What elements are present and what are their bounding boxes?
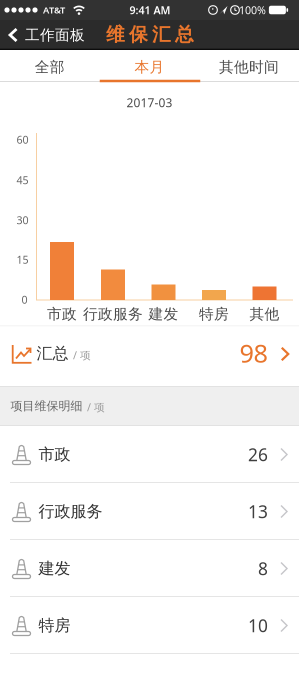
staticText: 0 — [21, 292, 27, 307]
staticText: 建发 — [38, 559, 70, 578]
staticText: 本月 — [134, 58, 164, 76]
staticText: 汇 — [152, 23, 171, 46]
staticText: 15 — [16, 252, 28, 267]
staticText: 8 — [258, 557, 268, 580]
staticText: 其他 — [249, 305, 279, 323]
staticText: 13 — [248, 500, 268, 523]
staticText: 9:41 AM — [129, 3, 170, 17]
staticText: 市政 — [38, 445, 70, 464]
staticText: AT&T — [43, 4, 65, 16]
staticText: 保 — [129, 23, 148, 46]
staticText: 60 — [16, 132, 28, 147]
staticText: 建发 — [148, 305, 178, 323]
staticText: 100% — [239, 3, 266, 17]
staticText: 市政 — [47, 305, 77, 323]
staticText: 其他时间 — [219, 58, 279, 76]
button[interactable]: 全部 — [0, 51, 100, 82]
button[interactable]: 建发 — [0, 540, 299, 597]
staticText: / 项 — [73, 348, 91, 362]
staticText: 项目维保明细 — [10, 399, 82, 413]
button[interactable]: 特房 — [0, 597, 299, 654]
button[interactable]: 市政 — [0, 426, 299, 483]
staticText: 行政服务 — [83, 305, 143, 323]
staticText: 全部 — [35, 58, 65, 76]
staticText: 总 — [175, 23, 194, 46]
staticText: 汇总 — [36, 344, 68, 363]
staticText: / 项 — [87, 400, 105, 414]
staticText: 10 — [248, 614, 268, 637]
button[interactable]: 行政服务 — [0, 483, 299, 540]
button[interactable]: 返回工作面板 — [8, 20, 85, 50]
staticText: 维 — [106, 23, 125, 46]
staticText: 特房 — [199, 305, 229, 323]
staticText: 2017-03 — [126, 94, 172, 110]
staticText: 特房 — [38, 616, 70, 635]
staticText: 26 — [248, 443, 268, 466]
button[interactable]: 本月 — [100, 51, 199, 82]
staticText: 30 — [16, 213, 28, 227]
staticText: 45 — [16, 173, 28, 187]
button[interactable]: 汇总 — [0, 326, 299, 386]
staticText: 98 — [239, 336, 267, 370]
staticText: 行政服务 — [38, 502, 102, 521]
button[interactable]: 其他时间 — [199, 51, 299, 82]
staticText: 工作面板 — [25, 26, 85, 44]
